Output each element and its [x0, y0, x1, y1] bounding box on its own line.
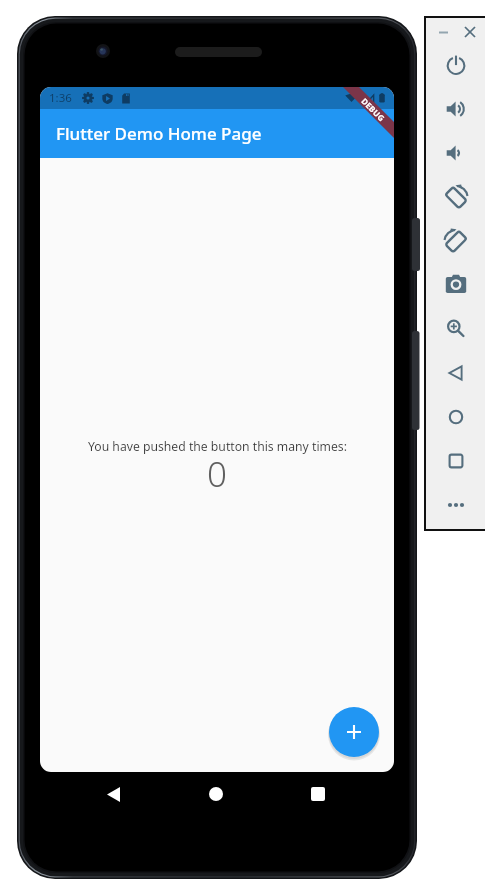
staticText: 1:36: [49, 90, 72, 106]
button[interactable]: Back: [442, 359, 470, 387]
button[interactable]: Increment: [329, 707, 379, 757]
button[interactable]: Screenshot: [442, 270, 470, 298]
button[interactable]: Power: [442, 51, 470, 79]
staticText: DEBUG: [359, 95, 388, 124]
button[interactable]: Volume up: [442, 95, 470, 123]
button[interactable]: Minimize: [435, 24, 451, 40]
button[interactable]: Home: [442, 403, 470, 431]
button[interactable]: Recents: [304, 780, 332, 808]
button[interactable]: Zoom: [442, 314, 470, 342]
button[interactable]: Close: [462, 24, 478, 40]
button[interactable]: Home: [202, 780, 230, 808]
staticText: 0: [207, 450, 227, 498]
button[interactable]: Overview: [442, 447, 470, 475]
button[interactable]: Back: [99, 780, 127, 808]
button[interactable]: More: [442, 491, 470, 519]
staticText: Flutter Demo Home Page: [56, 122, 262, 145]
button[interactable]: Volume down: [442, 139, 470, 167]
staticText: You have pushed the button this many tim…: [88, 438, 347, 455]
button[interactable]: Rotate right: [442, 227, 470, 255]
button[interactable]: Rotate left: [442, 183, 470, 211]
